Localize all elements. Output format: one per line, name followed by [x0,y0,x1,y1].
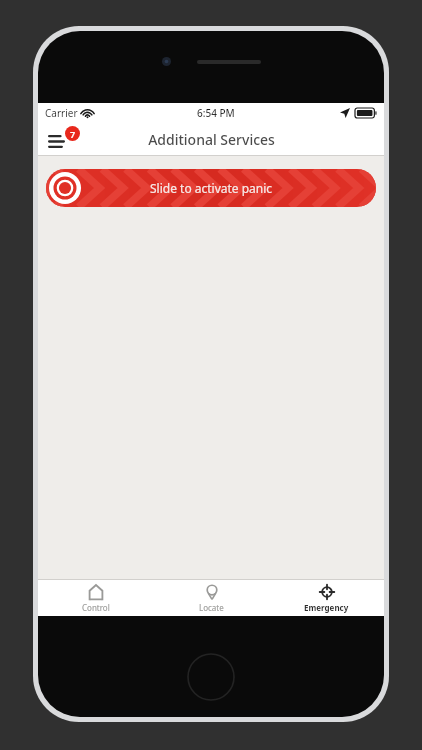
button[interactable]: Open navigation menu, 7 notifications [47,126,81,154]
staticText: Slide to activate panic [150,180,273,196]
staticText: Locate [199,602,224,613]
staticText: 7 [70,128,76,140]
button[interactable]: Panic slider handle [49,172,81,204]
button[interactable]: Slide to activate panic [46,169,376,207]
staticText: Carrier [45,106,78,120]
staticText: Emergency [304,602,349,613]
button[interactable]: Locate [154,580,269,616]
button[interactable]: Control [38,580,154,616]
staticText: Control [82,602,110,613]
staticText: Additional Services [148,130,275,149]
staticText: 6:54 PM [197,106,235,120]
button[interactable]: Emergency [269,580,384,616]
